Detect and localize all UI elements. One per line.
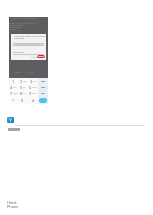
staticText: Phone no. — [13, 50, 25, 53]
button[interactable]: 6 — [28, 84, 38, 90]
staticText: 0 — [21, 98, 24, 103]
button[interactable]: 8 — [18, 90, 28, 97]
button[interactable]: 3 — [28, 78, 38, 84]
button[interactable]: SELECT FROM CONTACTS — [13, 43, 44, 46]
button[interactable]: Space — [38, 84, 48, 90]
staticText: 9 — [29, 91, 32, 96]
staticText: MNO — [32, 86, 37, 89]
staticText: 4 — [10, 85, 13, 90]
staticText: 7 — [10, 91, 13, 96]
button[interactable]: * — [9, 97, 18, 104]
staticText: messages — [14, 37, 25, 40]
staticText: + — [24, 99, 26, 102]
button[interactable]: Symbols — [38, 90, 48, 97]
button[interactable]: Call — [38, 97, 48, 104]
staticText: TUV — [23, 92, 27, 95]
button[interactable]: 4 — [9, 84, 18, 90]
staticText: Phone — [7, 204, 19, 209]
staticText: Hindi — [7, 200, 17, 205]
staticText: 6 — [29, 85, 32, 90]
staticText: SELECT FROM CONTACTS — [15, 43, 42, 46]
staticText: 2 — [20, 79, 23, 84]
staticText: JKL — [23, 86, 26, 89]
staticText: CANCEL — [31, 56, 40, 59]
staticText: Language content of incoming — [14, 35, 46, 38]
staticText: DEF — [33, 80, 37, 83]
button[interactable] — [37, 55, 45, 58]
staticText: WXYZ — [32, 92, 38, 95]
button[interactable]: 2 — [18, 78, 28, 84]
staticText: 5 — [20, 85, 23, 90]
staticText: PQRS — [13, 92, 18, 95]
button[interactable]: Backspace — [38, 78, 48, 84]
button[interactable]: 0 — [18, 97, 28, 104]
button[interactable]: 9 — [28, 90, 38, 97]
button[interactable]: 5 — [18, 84, 28, 90]
staticText: # — [32, 98, 35, 103]
button[interactable]: App icon — [7, 117, 14, 123]
staticText: GHI — [13, 86, 17, 89]
button[interactable]: # — [28, 97, 38, 104]
button[interactable]: 1 — [9, 78, 18, 84]
staticText: 8 — [20, 91, 23, 96]
button[interactable]: 7 — [9, 90, 18, 97]
staticText: * — [12, 98, 15, 103]
staticText: 3 — [30, 79, 33, 84]
staticText: ABC — [23, 80, 27, 83]
staticText: 1 — [12, 79, 15, 84]
